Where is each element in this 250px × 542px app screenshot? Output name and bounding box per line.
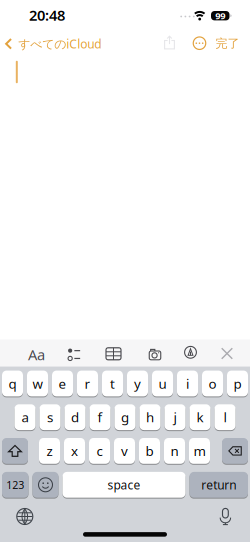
button[interactable]: Dismiss keyboard bar [217,340,237,366]
staticText: p [233,375,241,392]
staticText: j [173,408,176,426]
button[interactable]: u [152,371,173,396]
button[interactable]: c [89,438,110,464]
button[interactable]: Markup [178,339,202,365]
button[interactable]: 123 [2,472,28,498]
button[interactable]: x [64,438,85,464]
button[interactable]: v [114,438,135,464]
button[interactable]: Share [164,35,175,49]
button[interactable]: return [189,472,248,498]
staticText: f [97,408,102,426]
staticText: q [8,375,16,392]
staticText: return [201,477,236,493]
button[interactable]: f [89,404,110,430]
staticText: y [134,375,141,392]
button[interactable]: d [64,404,85,430]
button[interactable]: m [189,438,210,464]
button[interactable]: Emoji [32,472,58,498]
button[interactable]: e [52,371,73,396]
button[interactable]: j [164,404,185,430]
staticText: g [121,408,129,426]
button[interactable]: n [164,438,185,464]
staticText: i [186,375,189,392]
button[interactable]: w [27,371,48,396]
staticText: n [170,442,178,460]
staticText: Aa [28,345,45,364]
button[interactable]: space [62,472,185,498]
staticText: d [71,408,79,426]
staticText: v [121,442,128,460]
button[interactable]: z [39,438,60,464]
button[interactable]: Delete [222,438,248,464]
staticText: u [158,375,166,392]
staticText: k [196,408,203,426]
staticText: r [84,375,90,392]
button[interactable]: Shift [2,438,28,464]
button[interactable]: Table [101,341,125,367]
staticText: l [223,408,226,426]
button[interactable]: 完了 [215,36,239,51]
staticText: w [32,375,42,392]
button[interactable]: すべてのiCloud [5,36,101,52]
staticText: s [47,408,53,426]
staticText: z [46,442,52,460]
button[interactable]: b [139,438,160,464]
staticText: o [208,375,216,392]
staticText: 完了 [215,36,239,51]
staticText: c [96,442,102,460]
button[interactable]: t [102,371,123,396]
button[interactable]: h [139,404,160,430]
staticText: b [145,442,153,460]
button[interactable]: l [214,404,235,430]
button[interactable]: Next keyboard [17,508,33,524]
button[interactable]: o [202,371,223,396]
staticText: m [193,442,205,460]
button[interactable]: Checklist [62,341,86,367]
staticText: t [110,375,115,392]
button[interactable]: q [2,371,23,396]
button[interactable]: k [189,404,210,430]
staticText: e [58,375,66,392]
staticText: space [107,477,140,493]
staticText: すべてのiCloud [18,36,101,52]
staticText: x [71,442,78,460]
button[interactable]: y [127,371,148,396]
button[interactable]: p [227,371,248,396]
staticText: a [21,408,28,426]
button[interactable]: More [193,37,206,50]
button[interactable]: Format [24,341,48,367]
button[interactable]: Dictation [219,508,232,525]
button[interactable]: r [77,371,98,396]
button[interactable]: Camera [142,341,168,367]
staticText: 123 [6,478,24,492]
staticText: 99 [215,9,225,22]
button[interactable]: g [114,404,135,430]
button[interactable]: a [14,404,35,430]
staticText: h [146,408,154,426]
button[interactable]: s [39,404,60,430]
button[interactable]: i [177,371,198,396]
staticText: 20:48 [29,5,65,25]
